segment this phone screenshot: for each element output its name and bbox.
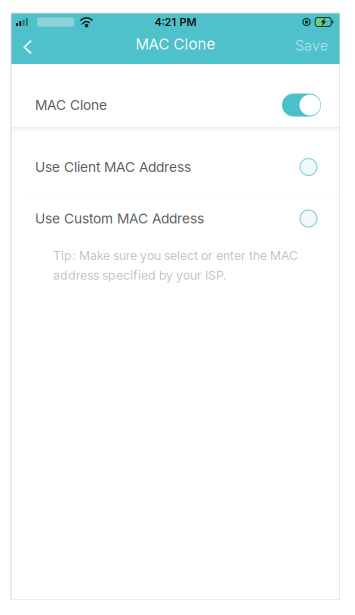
staticText: MAC Clone bbox=[135, 35, 215, 53]
staticText: address specified by your ISP. bbox=[53, 268, 227, 283]
staticText: 4:21 PM bbox=[154, 15, 196, 29]
staticText: Save bbox=[295, 37, 328, 54]
button[interactable]: MAC Clone bbox=[282, 93, 321, 116]
staticText: Use Client MAC Address bbox=[35, 159, 191, 175]
button[interactable]: Use Client MAC Address bbox=[11, 141, 340, 193]
button[interactable]: Save bbox=[282, 31, 340, 64]
staticText: Use Custom MAC Address bbox=[35, 210, 204, 227]
button[interactable]: Use Custom MAC Address bbox=[11, 197, 340, 240]
staticText: MAC Clone bbox=[35, 97, 107, 113]
button[interactable]: Back bbox=[11, 31, 69, 64]
staticText: Tip: Make sure you select or enter the M… bbox=[53, 248, 298, 263]
